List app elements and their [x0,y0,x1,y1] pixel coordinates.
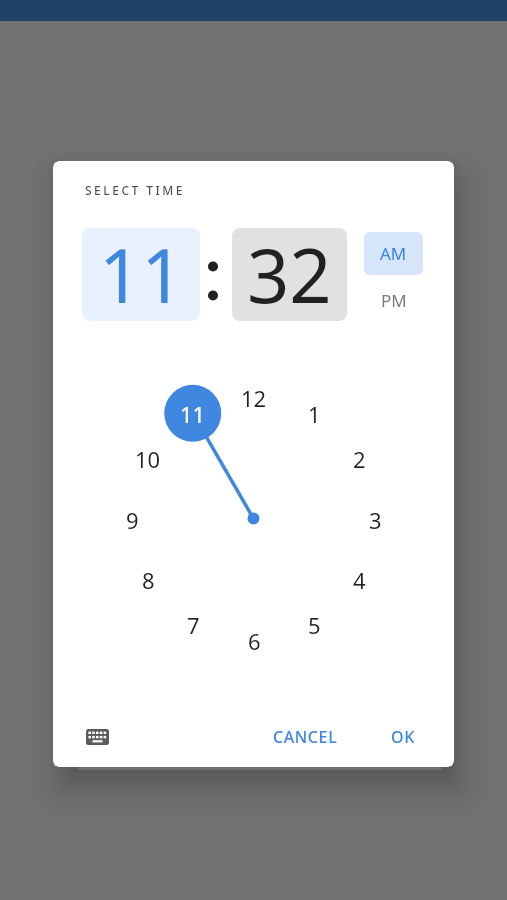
staticText: 7 [187,610,200,638]
button[interactable]: 5 [294,610,334,638]
staticText: 3 [369,505,382,533]
button[interactable]: 11 [82,228,200,321]
button[interactable]: AM [364,232,423,275]
button[interactable]: 8 [128,565,168,593]
staticText: 2 [353,444,366,472]
button[interactable]: OK [373,717,433,757]
button[interactable]: 4 [339,565,379,593]
staticText: AM [380,242,407,265]
button[interactable]: PM [364,281,423,319]
staticText: 6 [248,626,261,654]
button[interactable]: 11 [173,399,213,427]
button[interactable]: 1 [294,399,334,427]
button[interactable]: 6 [234,626,274,654]
staticText: 5 [308,610,321,638]
staticText: CANCEL [273,726,338,748]
staticText: 12 [241,383,267,411]
button[interactable]: 2 [339,444,379,472]
button[interactable]: 32 [232,228,347,321]
staticText: 9 [126,505,139,533]
staticText: OK [391,726,415,748]
button[interactable]: 3 [355,505,395,533]
staticText: 32 [247,228,332,317]
staticText: 10 [135,444,161,472]
staticText: 4 [353,565,366,593]
staticText: 11 [99,228,184,317]
staticText: 8 [142,565,155,593]
button[interactable]: 7 [173,610,213,638]
staticText: 1 [308,399,321,427]
button[interactable]: 12 [234,383,274,411]
button[interactable]: 10 [128,444,168,472]
button[interactable]: 9 [112,505,152,533]
staticText: 11 [180,399,206,427]
button[interactable]: CANCEL [249,717,362,757]
staticText: PM [381,289,407,312]
button[interactable] [75,717,119,757]
staticText: SELECT TIME [85,182,186,198]
